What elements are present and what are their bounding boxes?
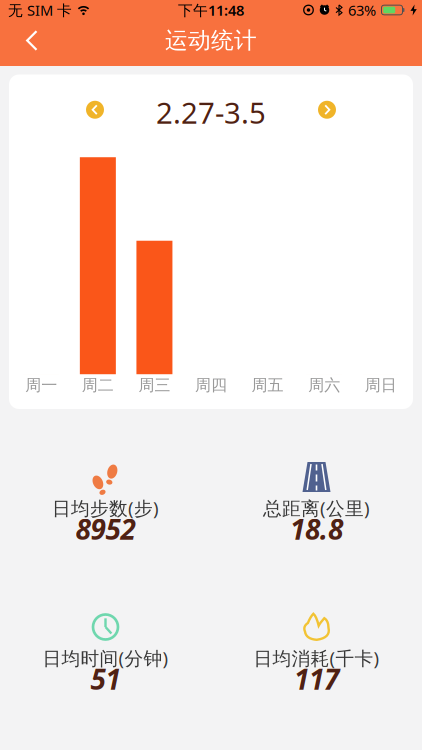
staticText: 下午11:48 (178, 0, 244, 20)
staticText: 日均消耗(千卡) (253, 646, 379, 670)
staticText: 周一 (25, 375, 57, 395)
button[interactable] (0, 20, 50, 66)
staticText: 无 SIM 卡 (8, 0, 72, 20)
staticText: 8952 (75, 510, 135, 548)
staticText: 周六 (308, 375, 340, 395)
staticText: 周五 (252, 375, 284, 395)
staticText: 18.8 (290, 510, 343, 548)
staticText: 日均时间(分钟) (42, 646, 168, 670)
staticText: 日均步数(步) (52, 496, 159, 520)
staticText: 总距离(公里) (263, 496, 370, 520)
staticText: 51 (90, 660, 120, 698)
staticText: 周二 (82, 375, 114, 395)
staticText: 周日 (365, 375, 397, 395)
button[interactable] (86, 101, 104, 119)
staticText: 2.27-3.5 (156, 93, 266, 132)
button[interactable] (318, 101, 336, 119)
staticText: 周四 (195, 375, 227, 395)
staticText: 周三 (138, 375, 170, 395)
staticText: 运动统计 (165, 27, 257, 54)
staticText: 117 (294, 660, 339, 698)
staticText: 63% (348, 0, 376, 20)
